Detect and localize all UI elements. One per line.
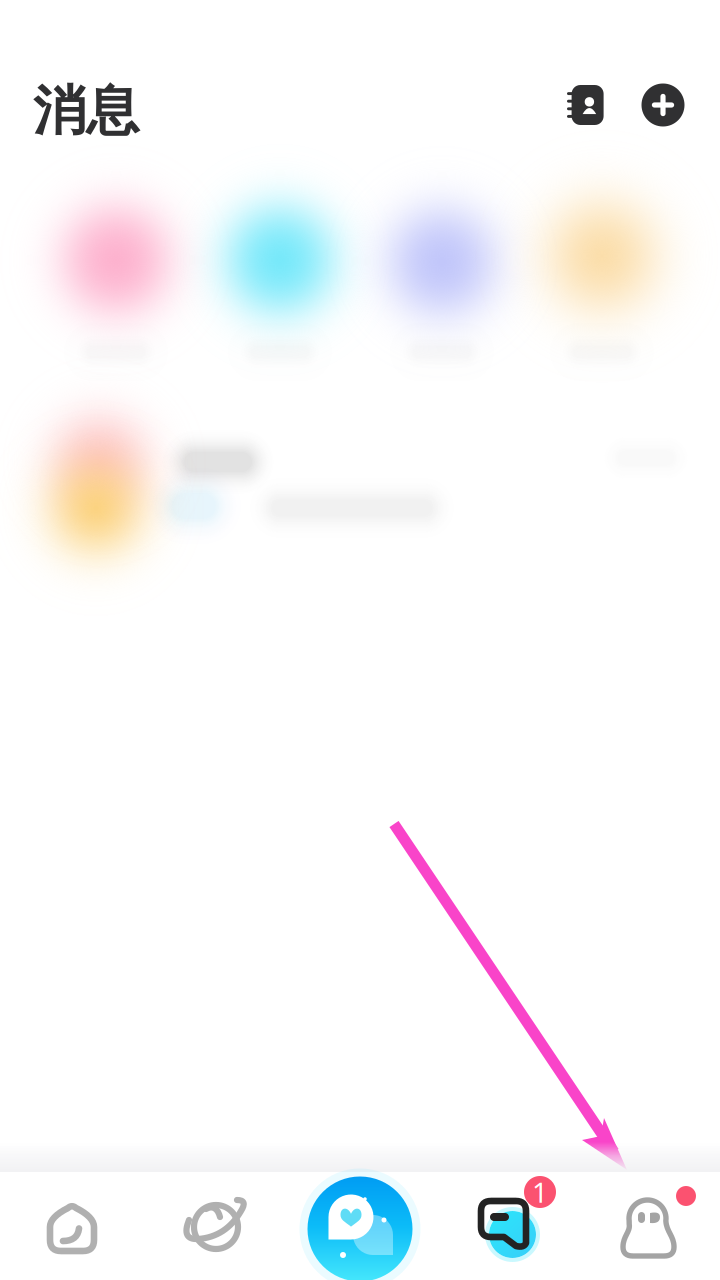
staticText: 消息 [33,78,139,144]
button[interactable]: Discover [144,1172,288,1280]
button[interactable]: New chat [294,1163,426,1280]
button[interactable]: Messages [432,1172,576,1280]
button[interactable]: Add [622,64,704,146]
staticText: 1 [532,1173,548,1211]
button[interactable]: Contacts [542,64,624,146]
button[interactable]: QQ [576,1172,720,1280]
button[interactable]: Home [0,1172,144,1280]
